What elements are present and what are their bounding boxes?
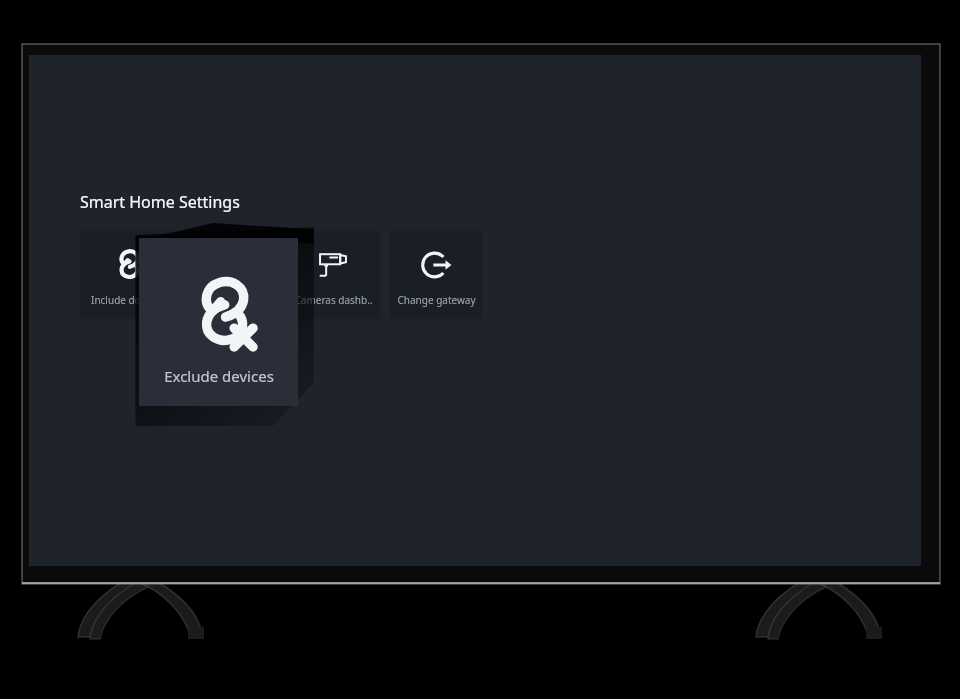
button[interactable]: Include devices [80,231,174,319]
button[interactable]: Manage devices [183,231,277,319]
staticText: Change gateway [397,293,476,307]
staticText: Manage devices [192,293,268,307]
staticText: Cameras dashb.. [294,293,373,307]
staticText: Include devices [91,293,163,307]
button[interactable]: Change gateway [389,231,483,319]
button[interactable]: Exclude devices [139,238,298,406]
staticText: Smart Home Settings [80,191,240,213]
staticText: Exclude devices [164,366,274,386]
button[interactable]: Cameras dashb.. [286,231,380,319]
